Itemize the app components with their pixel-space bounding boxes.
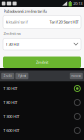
button[interactable]: T 30 HIT bbox=[3, 38, 81, 50]
staticText: 20:13 bbox=[73, 1, 82, 6]
staticText: T 80 HIT bbox=[3, 100, 17, 105]
button[interactable]: Změnit bbox=[3, 56, 81, 68]
staticText: Požadovaná změna tarifu bbox=[3, 9, 46, 14]
button[interactable]: Vybrat bbox=[15, 73, 28, 79]
button[interactable]: T 600 HIT bbox=[0, 123, 84, 137]
staticText: Hotovo bbox=[71, 74, 81, 78]
staticText: Změnit bbox=[36, 60, 48, 65]
staticText: T 600 HIT bbox=[3, 128, 19, 133]
staticText: Zrušit bbox=[4, 74, 12, 78]
button[interactable]: T 300 HIT bbox=[0, 109, 84, 123]
staticText: Tarif 20 Start HIT bbox=[49, 19, 78, 25]
staticText: T 30 HIT bbox=[3, 86, 17, 91]
button[interactable]: Hotovo bbox=[70, 73, 83, 79]
button[interactable]: T 80 HIT bbox=[0, 95, 84, 109]
button[interactable]: T 30 HIT bbox=[0, 81, 84, 95]
staticText: Změnit na bbox=[3, 31, 20, 36]
staticText: T 300 HIT bbox=[3, 114, 19, 119]
staticText: Vybrat bbox=[18, 74, 26, 78]
button[interactable]: Zrušit bbox=[1, 73, 14, 79]
staticText: Aktuální tarif bbox=[6, 19, 28, 25]
staticText: T 30 HIT bbox=[6, 42, 20, 47]
